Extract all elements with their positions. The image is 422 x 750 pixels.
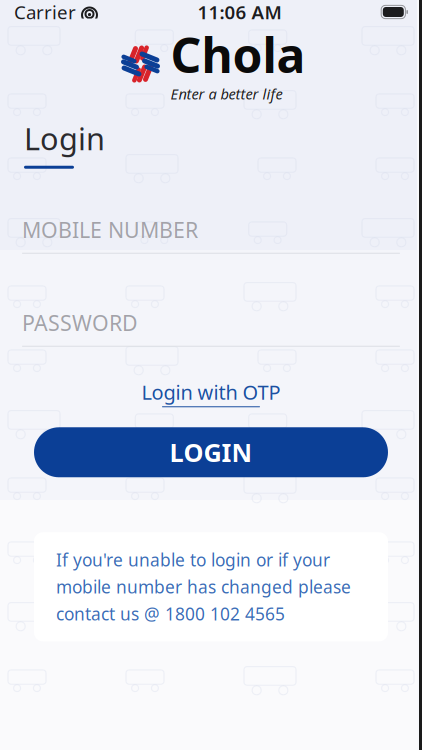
staticText: Chola <box>170 22 305 86</box>
staticText: LOGIN <box>169 435 252 469</box>
staticText: Enter a better life <box>170 84 282 104</box>
button[interactable]: Login with OTP <box>129 373 292 413</box>
staticText: MOBILE NUMBER <box>22 216 198 244</box>
staticText: Carrier <box>14 0 76 24</box>
staticText: Login with OTP <box>141 379 280 405</box>
staticText: PASSWORD <box>22 309 138 337</box>
staticText: 11:06 AM <box>198 0 282 24</box>
button[interactable]: LOGIN <box>34 427 388 477</box>
staticText: Login <box>24 118 105 159</box>
staticText: If you're unable to login or if your mob… <box>56 548 351 625</box>
